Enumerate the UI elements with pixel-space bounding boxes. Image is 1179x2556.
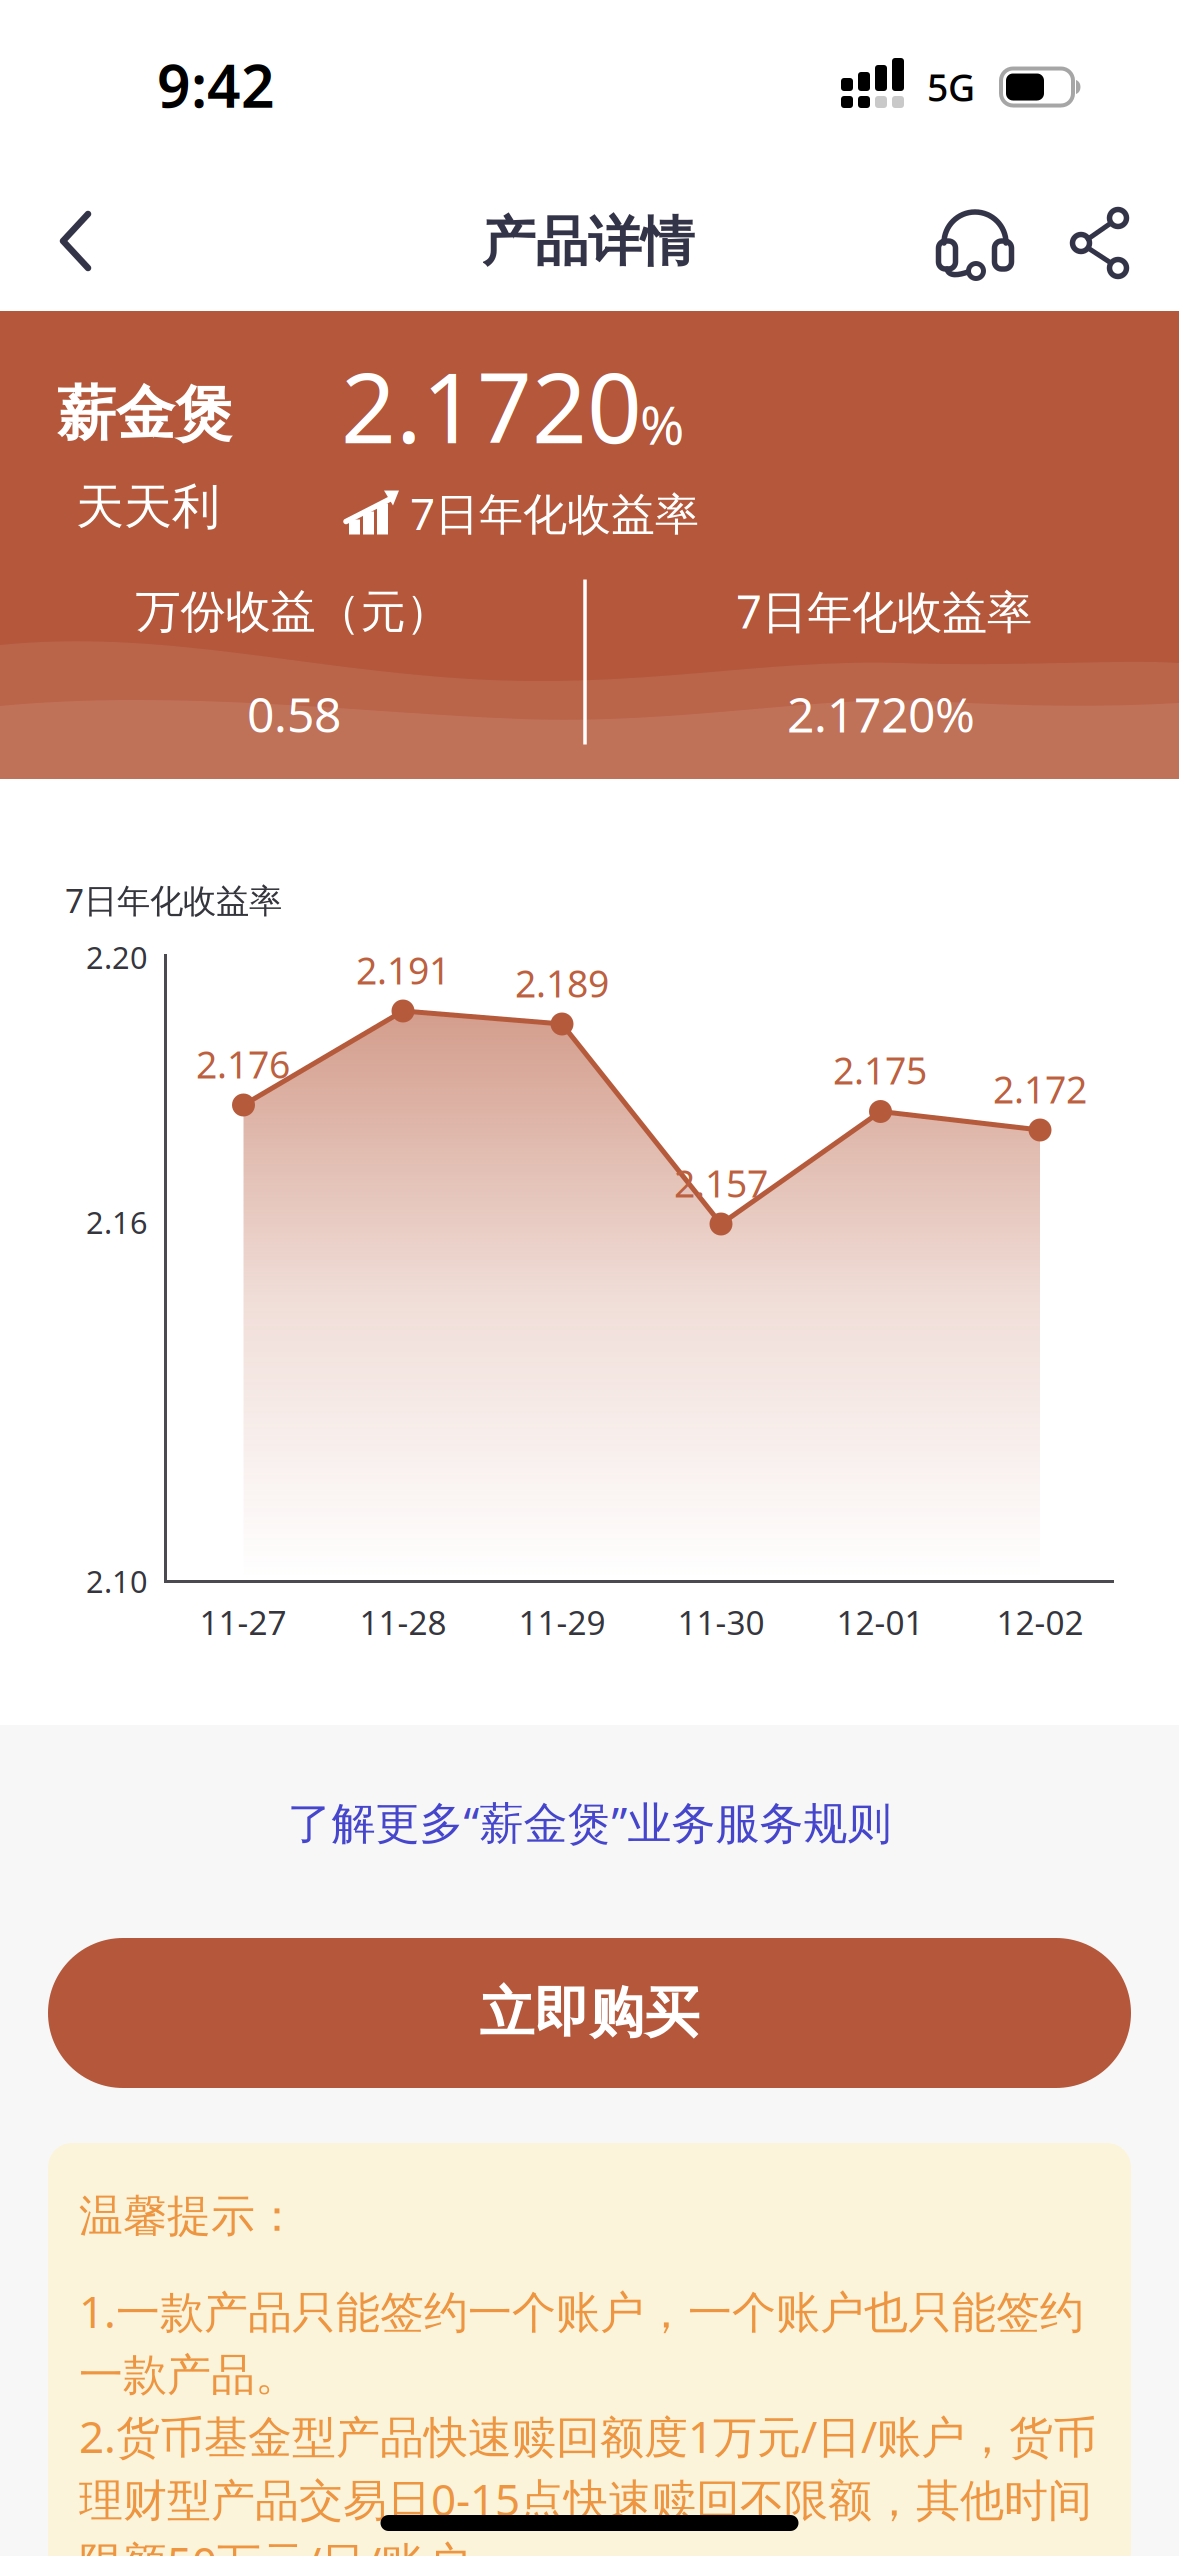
staticText: 2.189 bbox=[515, 958, 609, 1008]
staticText: 12-01 bbox=[836, 1600, 923, 1644]
button[interactable]: 了解更多“薪金煲”业务服务规则 bbox=[139, 1777, 1039, 1867]
button[interactable] bbox=[930, 198, 1020, 288]
staticText: 11-27 bbox=[199, 1600, 286, 1644]
staticText: 2.1720 bbox=[341, 342, 642, 470]
staticText: 2.10 bbox=[86, 1561, 148, 1601]
staticText: 2.157 bbox=[674, 1158, 768, 1208]
staticText: 一款产品。 bbox=[79, 2348, 299, 2402]
button[interactable]: 立即购买 bbox=[48, 1938, 1131, 2088]
staticText: 限额50万元/日/账户 bbox=[79, 2533, 469, 2556]
staticText: 薪金煲 bbox=[57, 378, 234, 450]
staticText: % bbox=[640, 389, 684, 459]
staticText: 2.货币基金型产品快速赎回额度1万元/日/账户，货币 bbox=[79, 2407, 1097, 2465]
staticText: 2.20 bbox=[86, 937, 148, 977]
staticText: 了解更多“薪金煲”业务服务规则 bbox=[287, 1793, 891, 1851]
staticText: 2.16 bbox=[86, 1202, 148, 1242]
staticText: 5G bbox=[927, 62, 975, 112]
staticText: 产品详情 bbox=[482, 209, 694, 275]
staticText: 11-30 bbox=[677, 1600, 764, 1644]
staticText: 7日年化收益率 bbox=[736, 581, 1032, 641]
staticText: 2.172 bbox=[993, 1064, 1087, 1114]
staticText: 2.176 bbox=[196, 1039, 290, 1089]
staticText: 11-28 bbox=[359, 1600, 446, 1644]
staticText: 11-29 bbox=[518, 1600, 605, 1644]
staticText: 立即购买 bbox=[479, 1979, 699, 2046]
staticText: 9:42 bbox=[157, 46, 275, 124]
staticText: 7日年化收益率 bbox=[65, 878, 282, 922]
staticText: 理财型产品交易日0-15点快速赎回不限额，其他时间 bbox=[79, 2470, 1092, 2528]
staticText: 温馨提示： bbox=[79, 2189, 299, 2243]
staticText: 2.1720% bbox=[787, 682, 975, 746]
staticText: 7日年化收益率 bbox=[410, 484, 699, 542]
staticText: 天天利 bbox=[76, 477, 220, 536]
button[interactable] bbox=[1060, 203, 1140, 283]
staticText: 1.一款产品只能签约一个账户，一个账户也只能签约 bbox=[79, 2282, 1084, 2340]
staticText: 2.191 bbox=[356, 945, 450, 995]
staticText: 0.58 bbox=[247, 682, 341, 746]
staticText: 2.175 bbox=[833, 1045, 927, 1095]
staticText: 12-02 bbox=[996, 1600, 1083, 1644]
button[interactable] bbox=[50, 201, 110, 281]
staticText: 万份收益（元） bbox=[135, 584, 450, 640]
